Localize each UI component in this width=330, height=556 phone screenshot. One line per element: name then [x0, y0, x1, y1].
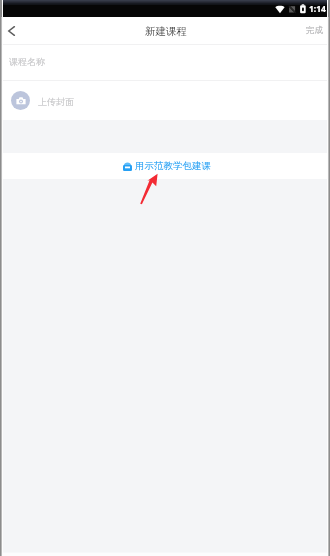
button[interactable]: 课程名称: [0, 45, 330, 80]
button[interactable]: 完成: [298, 19, 330, 42]
staticText: 课程名称: [9, 56, 45, 67]
staticText: 用示范教学包建课: [135, 160, 211, 172]
staticText: 完成: [306, 25, 323, 36]
staticText: 上传封面: [38, 96, 74, 107]
button[interactable]: 上传封面: [0, 81, 330, 120]
staticText: 新建课程: [145, 25, 187, 38]
button[interactable]: Back: [0, 17, 23, 44]
staticText: 1:14: [309, 3, 326, 15]
button[interactable]: 用示范教学包建课: [115, 156, 215, 176]
